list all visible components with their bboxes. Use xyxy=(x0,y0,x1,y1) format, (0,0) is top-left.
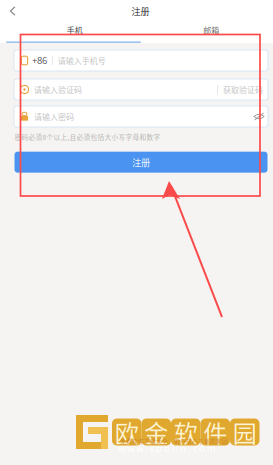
button[interactable]: 邮箱 xyxy=(149,22,273,38)
staticText: 欧 xyxy=(115,415,139,449)
staticText: 注册 xyxy=(132,155,150,169)
button[interactable]: Show password xyxy=(250,106,268,127)
staticText: 密码必须8个以上,且必须包括大小写字母和数字 xyxy=(14,132,160,142)
staticText: 请输入手机号 xyxy=(58,55,106,66)
staticText: 邮箱 xyxy=(203,24,219,36)
staticText: 注册 xyxy=(131,4,149,17)
button[interactable]: Back xyxy=(0,0,26,22)
staticText: +86 xyxy=(32,54,47,67)
staticText: 金 xyxy=(144,415,168,449)
button[interactable]: 手机 xyxy=(0,22,149,38)
staticText: w w w . s p o j i n . c o m xyxy=(118,442,216,454)
button[interactable]: 注册 xyxy=(14,152,267,173)
staticText: 园 xyxy=(233,415,257,449)
staticText: 请输入密码 xyxy=(34,111,74,122)
staticText: 软 xyxy=(174,415,198,449)
button[interactable]: 获取验证码 xyxy=(218,79,268,100)
staticText: 获取验证码 xyxy=(223,84,263,95)
staticText: 手机 xyxy=(67,24,83,36)
staticText: 件 xyxy=(203,415,227,449)
staticText: 请输入验证码 xyxy=(34,84,82,95)
staticText: 免费软件下载大全，用户放心下载的家园 xyxy=(120,437,228,445)
